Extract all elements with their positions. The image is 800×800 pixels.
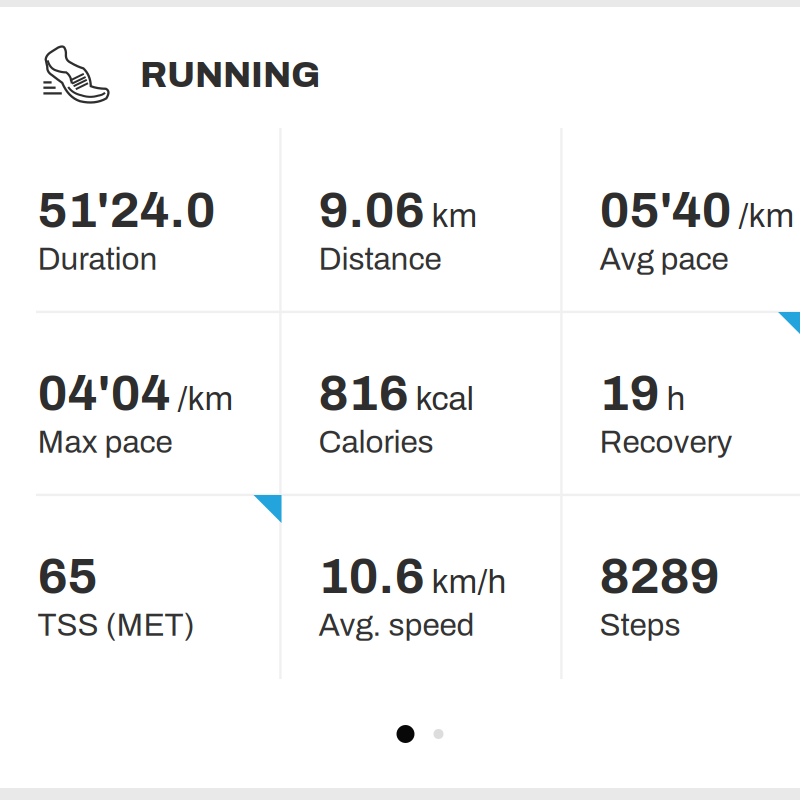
staticText: Distance: [318, 242, 441, 276]
staticText: 8289: [599, 548, 719, 603]
staticText: /km: [738, 198, 794, 234]
button[interactable]: 816: [281, 311, 562, 494]
staticText: 04'04: [37, 365, 170, 420]
staticText: Calories: [318, 425, 433, 459]
staticText: Max pace: [37, 425, 172, 459]
staticText: Recovery: [599, 425, 732, 459]
staticText: 51'24.0: [37, 182, 215, 237]
staticText: Steps: [599, 608, 680, 642]
staticText: Avg. speed: [318, 608, 474, 642]
staticText: 19: [599, 365, 659, 420]
button[interactable]: 10.6: [281, 494, 562, 677]
button[interactable]: 65: [0, 494, 281, 677]
button[interactable]: 19: [562, 311, 800, 494]
staticText: 05'40: [599, 182, 731, 237]
button[interactable]: RUNNING: [0, 0, 800, 128]
staticText: 10.6: [318, 548, 424, 603]
staticText: km: [431, 198, 477, 234]
button[interactable]: 51'24.0: [0, 128, 281, 311]
staticText: km/h: [431, 564, 506, 600]
staticText: TSS (MET): [37, 608, 194, 642]
button[interactable]: 9.06: [281, 128, 562, 311]
button[interactable]: 8289: [562, 494, 800, 677]
staticText: Avg pace: [599, 242, 728, 276]
staticText: h: [666, 381, 685, 417]
button[interactable]: 05'40: [562, 128, 800, 311]
staticText: 816: [318, 365, 408, 420]
staticText: RUNNING: [140, 55, 320, 95]
button[interactable]: 04'04: [0, 311, 281, 494]
staticText: Duration: [37, 242, 157, 276]
staticText: 9.06: [318, 182, 424, 237]
staticText: 65: [37, 548, 97, 603]
staticText: /km: [177, 381, 233, 417]
staticText: kcal: [415, 381, 474, 417]
